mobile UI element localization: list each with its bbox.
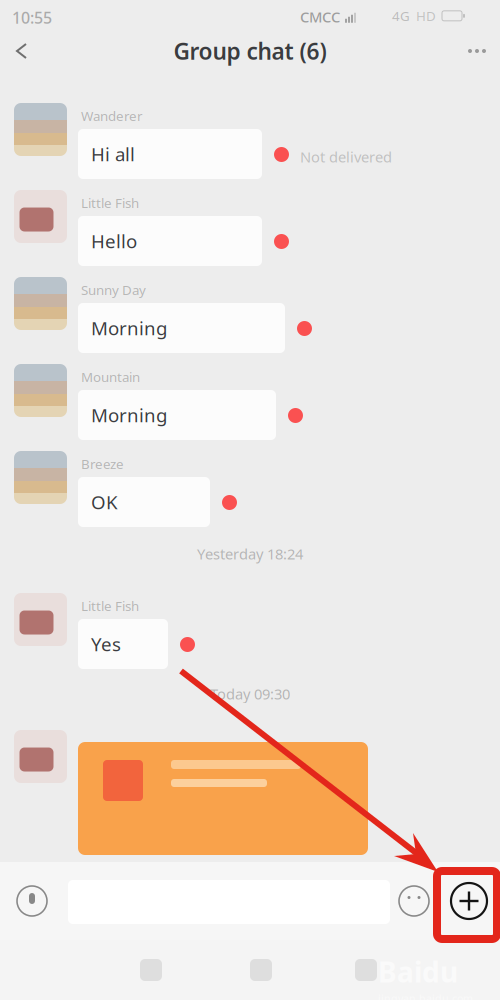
- staticText: CMCC: [300, 7, 340, 26]
- staticText: Hello: [91, 229, 137, 253]
- button[interactable]: Back: [0, 28, 44, 74]
- button[interactable]: Camera: [231, 940, 291, 1000]
- staticText: 4G: [392, 7, 410, 25]
- button[interactable]: Resend message: [274, 147, 289, 162]
- button[interactable]: Voice message: [8, 877, 56, 925]
- button[interactable]: Add: [443, 875, 495, 927]
- staticText: Hi all: [91, 142, 135, 166]
- staticText: Sunny Day: [81, 281, 146, 299]
- button[interactable]: Hello: [78, 216, 262, 266]
- staticText: Morning: [91, 316, 167, 340]
- staticText: Not delivered: [300, 147, 392, 166]
- button[interactable]: Resend message: [297, 321, 312, 336]
- staticText: Yes: [91, 632, 121, 656]
- button[interactable]: Hi all: [78, 129, 262, 179]
- staticText: Little Fish: [81, 194, 139, 212]
- staticText: Wanderer: [81, 107, 143, 125]
- button[interactable]: Resend message: [222, 495, 237, 510]
- button[interactable]: Video call: [336, 940, 396, 1000]
- staticText: Yesterday 18:24: [197, 544, 303, 563]
- button[interactable]: Morning: [78, 390, 276, 440]
- staticText: 10:55: [12, 7, 52, 28]
- button[interactable]: Emoji: [392, 877, 436, 925]
- staticText: Today 09:30: [210, 684, 290, 703]
- staticText: Mountain: [81, 368, 140, 386]
- staticText: Morning: [91, 403, 167, 427]
- button[interactable]: OK: [78, 477, 210, 527]
- staticText: Group chat (6): [173, 36, 326, 66]
- button[interactable]: Shared link card: [78, 742, 368, 855]
- button[interactable]: Album: [121, 940, 181, 1000]
- button[interactable]: Resend message: [180, 637, 195, 652]
- staticText: OK: [91, 490, 118, 514]
- button[interactable]: Yes: [78, 619, 168, 669]
- button[interactable]: Morning: [78, 303, 285, 353]
- button[interactable]: Resend message: [288, 408, 303, 423]
- staticText: Breeze: [81, 455, 124, 473]
- button[interactable]: More: [454, 28, 500, 74]
- staticText: HD: [416, 7, 436, 25]
- staticText: Little Fish: [81, 597, 139, 615]
- button[interactable]: Resend message: [274, 234, 289, 249]
